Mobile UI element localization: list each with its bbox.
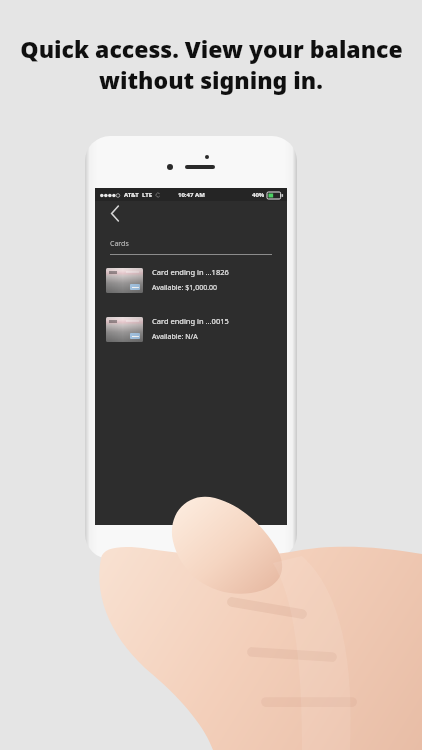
button[interactable]: Card ending in ...0015 bbox=[95, 316, 287, 342]
staticText: Cards bbox=[110, 239, 129, 249]
staticText: Available: N/A bbox=[152, 332, 198, 342]
staticText: AT&T bbox=[124, 191, 139, 199]
staticText: LTE bbox=[142, 191, 153, 199]
button[interactable]: Card ending in ...1826 bbox=[95, 267, 287, 293]
staticText: Quick access. View your balance bbox=[20, 33, 403, 64]
staticText: without signing in. bbox=[99, 64, 323, 95]
staticText: Card ending in ...1826 bbox=[152, 267, 229, 277]
button[interactable]: Back bbox=[104, 201, 126, 225]
staticText: 40% bbox=[252, 191, 265, 199]
staticText: 10:47 AM bbox=[178, 191, 205, 199]
staticText: Card ending in ...0015 bbox=[152, 316, 229, 326]
staticText: Available: $1,000.00 bbox=[152, 283, 218, 293]
